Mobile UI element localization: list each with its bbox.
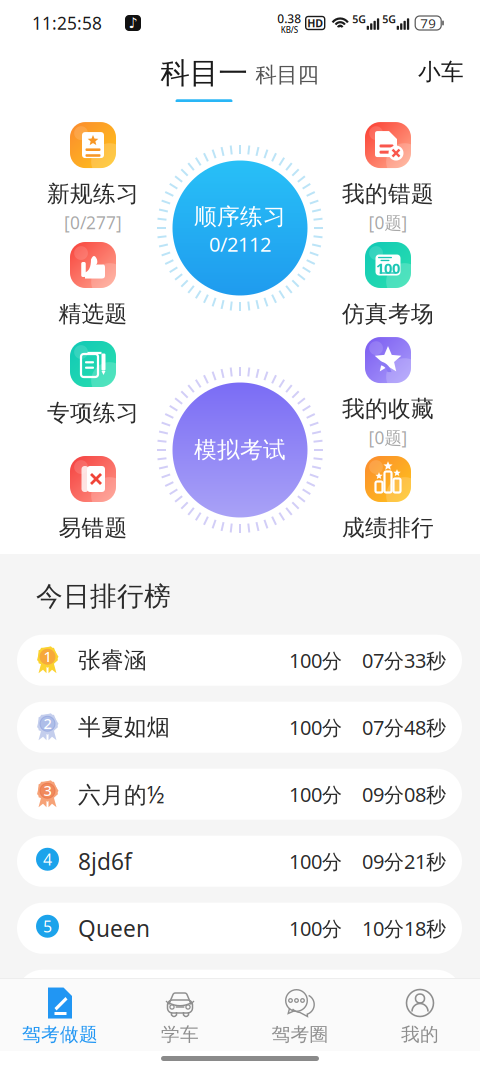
button[interactable]: 驾考圈 bbox=[240, 979, 360, 1051]
staticText: 100分 bbox=[289, 647, 342, 674]
button[interactable]: 4 bbox=[17, 836, 462, 887]
button[interactable]: 模拟考试 bbox=[154, 364, 326, 536]
button[interactable]: 顺序练习 bbox=[154, 142, 326, 314]
button[interactable]: 精选题 bbox=[28, 242, 158, 346]
staticText: 学车 bbox=[161, 1023, 199, 1046]
staticText: 专项练习 bbox=[47, 399, 139, 427]
staticText: 我的收藏 bbox=[342, 395, 434, 423]
staticText: 100分 bbox=[289, 982, 342, 1009]
staticText: 09分08秒 bbox=[362, 781, 446, 808]
staticText: [0题] bbox=[368, 426, 407, 449]
staticText: 10分18秒 bbox=[362, 915, 446, 942]
staticText: 07分48秒 bbox=[362, 714, 446, 741]
staticText: 半夏如烟 bbox=[78, 713, 170, 741]
staticText: 5 bbox=[43, 916, 52, 937]
button[interactable]: 2 bbox=[17, 702, 462, 753]
staticText: HD bbox=[307, 16, 323, 30]
button[interactable]: 小车 bbox=[418, 58, 464, 86]
staticText: 8jd6f bbox=[78, 846, 132, 876]
staticText: 驾考做题 bbox=[22, 1023, 98, 1046]
button[interactable]: 我的错题 bbox=[323, 126, 453, 230]
button[interactable]: 驾考做题 bbox=[0, 979, 120, 1051]
staticText: 我的错题 bbox=[342, 180, 434, 208]
staticText: [0/277] bbox=[64, 211, 122, 234]
staticText: 1 bbox=[43, 646, 51, 666]
staticText: ♪ bbox=[128, 15, 137, 31]
staticText: Queen bbox=[78, 913, 150, 943]
staticText: 100分 bbox=[289, 915, 342, 942]
staticText: 09分21秒 bbox=[362, 848, 446, 875]
staticText: 100分 bbox=[289, 848, 342, 875]
staticText: 07分33秒 bbox=[362, 647, 446, 674]
staticText: 4 bbox=[43, 849, 52, 870]
button[interactable]: 易错题 bbox=[28, 456, 158, 560]
staticText: 易错题 bbox=[58, 514, 127, 542]
staticText: 科目四 bbox=[255, 62, 318, 88]
staticText: 六月的½ bbox=[78, 779, 164, 809]
staticText: 2 bbox=[43, 713, 51, 733]
button[interactable]: 专项练习 bbox=[28, 341, 158, 445]
staticText: 0/2112 bbox=[209, 231, 271, 257]
staticText: 5G bbox=[352, 12, 366, 26]
button[interactable]: 6 bbox=[17, 970, 462, 1021]
staticText: 顺序练习 bbox=[194, 203, 286, 231]
staticText: 100 bbox=[376, 258, 400, 278]
staticText: 科目一 bbox=[160, 55, 247, 91]
staticText: 0.38 bbox=[277, 11, 301, 27]
button[interactable]: 5 bbox=[17, 903, 462, 954]
button[interactable]: 我的收藏 bbox=[323, 341, 453, 445]
staticText: 我的 bbox=[401, 1023, 439, 1046]
staticText: 仿真考场 bbox=[342, 300, 434, 328]
staticText: 79 bbox=[420, 14, 436, 32]
staticText: 今日排行榜 bbox=[36, 580, 171, 613]
button[interactable]: 学车 bbox=[120, 979, 240, 1051]
staticText: KB/S bbox=[281, 25, 298, 35]
staticText: 精选题 bbox=[58, 300, 127, 328]
staticText: 成绩排行 bbox=[342, 514, 434, 542]
staticText: 新规练习 bbox=[47, 180, 139, 208]
button[interactable]: 我的 bbox=[360, 979, 480, 1051]
staticText: 100分 bbox=[289, 781, 342, 808]
staticText: 张睿涵 bbox=[78, 646, 147, 674]
staticText: 100分 bbox=[289, 714, 342, 741]
button[interactable]: 3 bbox=[17, 769, 462, 820]
button[interactable]: 成绩排行 bbox=[323, 456, 453, 560]
staticText: 3 bbox=[43, 780, 51, 800]
button[interactable]: 科目一 bbox=[160, 55, 247, 103]
button[interactable]: 科目四 bbox=[255, 62, 318, 88]
staticText: 5G bbox=[382, 12, 396, 26]
button[interactable]: 1 bbox=[17, 635, 462, 686]
staticText: 驾考圈 bbox=[271, 1023, 328, 1046]
staticText: 模拟考试 bbox=[194, 436, 286, 464]
staticText: [0题] bbox=[368, 211, 407, 234]
button[interactable]: 新规练习 bbox=[28, 126, 158, 230]
staticText: 11分02秒 bbox=[362, 982, 446, 1009]
staticText: 11:25:58 bbox=[32, 11, 102, 34]
staticText: 6 bbox=[43, 983, 52, 1004]
staticText: 小车 bbox=[418, 58, 464, 86]
button[interactable]: 100 bbox=[323, 242, 453, 346]
